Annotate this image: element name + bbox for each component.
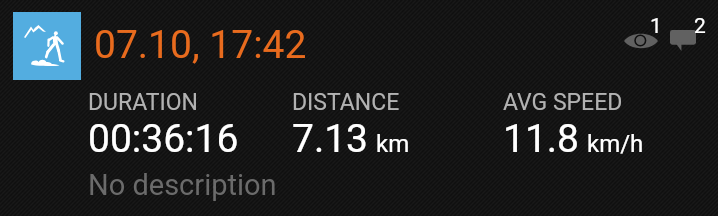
button[interactable]: 07.10, 17:42	[94, 22, 307, 68]
staticText: km	[376, 130, 410, 158]
staticText: AVG SPEED	[503, 89, 623, 116]
staticText: No description	[88, 168, 277, 202]
button[interactable]: Running activity	[0, 0, 718, 216]
staticText: DISTANCE	[292, 89, 400, 116]
staticText: km/h	[587, 130, 644, 158]
staticText: 7.13	[292, 116, 369, 162]
staticText: 1	[650, 14, 662, 39]
staticText: 00:36:16	[88, 116, 239, 162]
staticText: DURATION	[88, 89, 198, 116]
staticText: 07.10, 17:42	[94, 22, 307, 68]
button[interactable]: Views	[620, 14, 662, 50]
staticText: 2	[694, 14, 706, 39]
button[interactable]: Comments	[666, 14, 708, 54]
button[interactable]: Running activity	[13, 12, 81, 80]
staticText: 11.8	[503, 116, 580, 162]
